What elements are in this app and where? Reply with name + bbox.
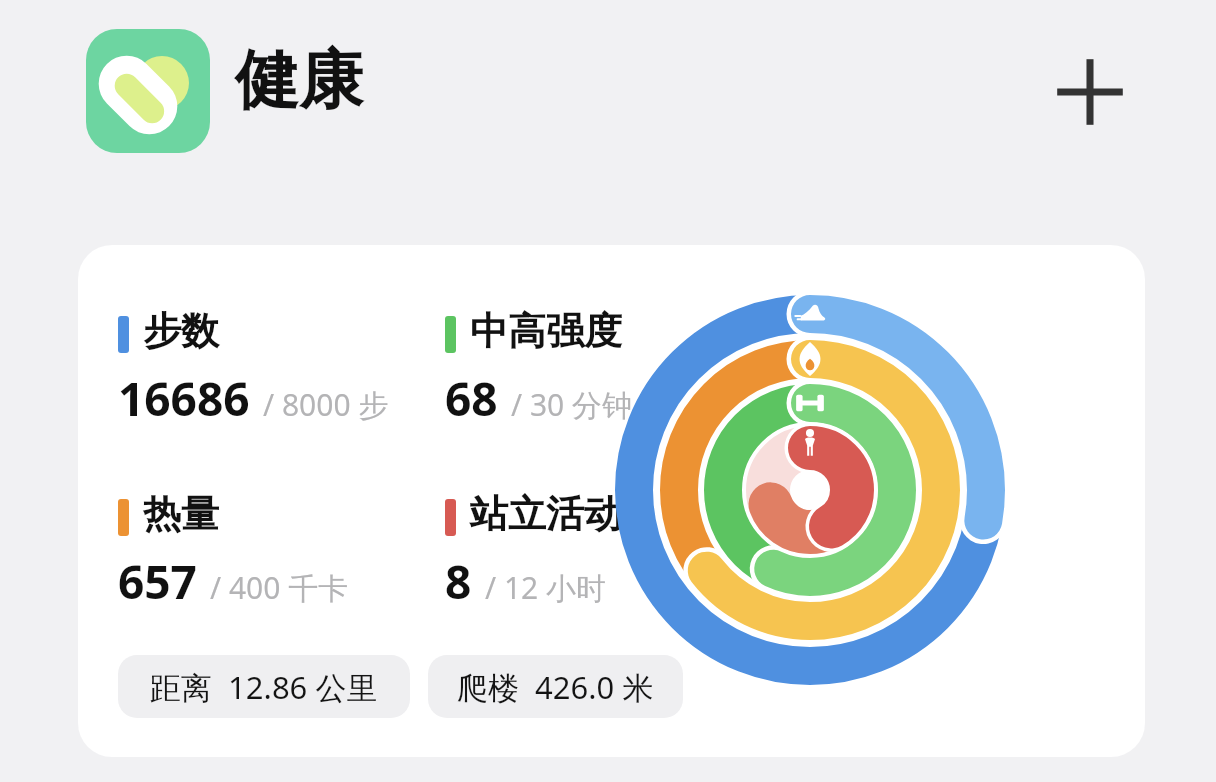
button[interactable]: 热量 bbox=[118, 490, 349, 613]
staticText: 站立活动 bbox=[470, 490, 622, 538]
staticText: 16686 bbox=[118, 367, 250, 430]
button[interactable]: 距离 12.86 公里 bbox=[118, 655, 410, 718]
button[interactable]: 步数 bbox=[78, 245, 1145, 757]
staticText: 68 bbox=[445, 367, 498, 430]
button[interactable]: 爬楼 426.0 米 bbox=[428, 655, 683, 718]
staticText: 8 bbox=[445, 550, 472, 613]
other: Activity rings bbox=[605, 285, 1015, 695]
staticText: / 12 小时 bbox=[485, 567, 607, 608]
staticText: 中高强度 bbox=[470, 307, 622, 355]
staticText: / 30 分钟 bbox=[511, 384, 633, 425]
button[interactable]: 步数 bbox=[118, 307, 389, 430]
button[interactable]: 中高强度 bbox=[445, 307, 633, 430]
button[interactable]: Add bbox=[1050, 52, 1130, 132]
staticText: 步数 bbox=[143, 307, 219, 355]
button[interactable]: Health bbox=[86, 29, 210, 153]
staticText: 657 bbox=[118, 550, 197, 613]
staticText: / 8000 步 bbox=[263, 384, 389, 425]
staticText: 健康 bbox=[235, 40, 363, 121]
staticText: 爬楼 426.0 米 bbox=[457, 666, 654, 708]
staticText: 热量 bbox=[143, 490, 219, 538]
staticText: / 400 千卡 bbox=[210, 567, 349, 608]
staticText: 距离 12.86 公里 bbox=[150, 666, 378, 708]
button[interactable]: 站立活动 bbox=[445, 490, 622, 613]
